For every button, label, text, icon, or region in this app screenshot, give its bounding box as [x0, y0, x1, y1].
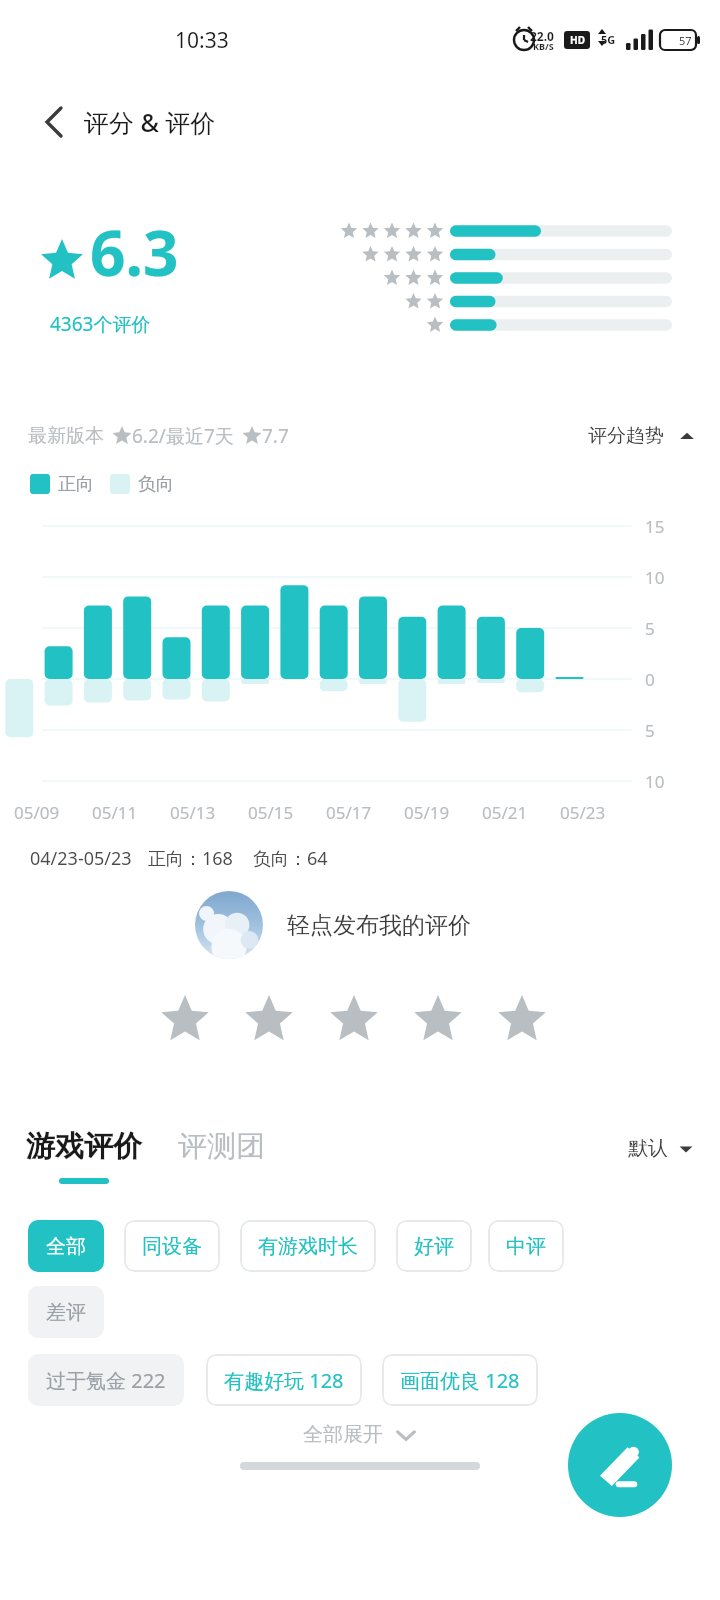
staticText: 4363个评价	[50, 311, 151, 337]
button[interactable]: 过于氪金 222	[28, 1354, 184, 1406]
button[interactable]: Rate this app	[0, 990, 720, 1050]
button[interactable]: 轻点发布我的评价	[0, 880, 720, 970]
staticText: 10	[645, 770, 665, 793]
staticText: 游戏评价	[26, 1128, 142, 1165]
staticText: 05/09	[14, 801, 60, 824]
button[interactable]: 默认	[628, 1136, 694, 1161]
staticText: 轻点发布我的评价	[287, 911, 471, 940]
staticText: 全部展开	[303, 1422, 383, 1447]
staticText: 好评	[414, 1234, 454, 1259]
staticText: 全部	[46, 1234, 86, 1259]
staticText: 评分 & 评价	[84, 105, 216, 139]
staticText: 5	[645, 719, 655, 742]
staticText: 评测团	[178, 1128, 265, 1165]
staticText: 05/23	[560, 801, 606, 824]
staticText: 0	[645, 668, 655, 691]
button[interactable]: 游戏评价	[26, 1128, 142, 1184]
staticText: 同设备	[142, 1234, 202, 1259]
button[interactable]: 全部	[28, 1220, 104, 1272]
staticText: 负向：64	[253, 846, 328, 871]
staticText: HD	[570, 33, 585, 47]
staticText: 05/21	[482, 801, 528, 824]
staticText: 10	[645, 566, 665, 589]
staticText: 负向	[138, 473, 174, 496]
staticText: 有游戏时长	[258, 1234, 358, 1259]
staticText: 评分趋势	[588, 424, 664, 448]
staticText: 6.3	[90, 210, 179, 294]
staticText: 6.2/最近7天	[132, 423, 234, 449]
staticText: 05/11	[92, 801, 138, 824]
staticText: 差评	[46, 1300, 86, 1325]
button[interactable]: 中评	[488, 1220, 564, 1272]
button[interactable]: Back	[30, 98, 78, 146]
staticText: 正向：168	[148, 846, 233, 871]
button[interactable]: 评测团	[178, 1128, 265, 1165]
button[interactable]: 有游戏时长	[240, 1220, 376, 1272]
button[interactable]: 全部展开	[303, 1422, 417, 1447]
staticText: 过于氪金 222	[46, 1367, 166, 1394]
staticText: 05/19	[404, 801, 450, 824]
staticText: 默认	[628, 1136, 668, 1161]
staticText: 05/13	[170, 801, 216, 824]
staticText: 10:33	[175, 26, 229, 55]
staticText: KB/S	[533, 40, 554, 52]
button[interactable]: 差评	[28, 1286, 104, 1338]
staticText: 5G	[601, 32, 616, 47]
staticText: 画面优良 128	[400, 1367, 520, 1394]
button[interactable]: Write review	[568, 1413, 672, 1517]
staticText: 05/17	[326, 801, 372, 824]
button[interactable]: 评分趋势	[588, 424, 696, 448]
button[interactable]: 同设备	[124, 1220, 220, 1272]
staticText: 5	[645, 617, 655, 640]
button[interactable]: 有趣好玩 128	[206, 1354, 362, 1406]
staticText: 有趣好玩 128	[224, 1367, 344, 1394]
staticText: 最新版本	[28, 424, 104, 448]
staticText: 04/23-05/23	[30, 846, 132, 871]
staticText: 中评	[506, 1234, 546, 1259]
button[interactable]: 好评	[396, 1220, 472, 1272]
staticText: 05/15	[248, 801, 294, 824]
staticText: 22.0	[530, 28, 554, 44]
button[interactable]: 画面优良 128	[382, 1354, 538, 1406]
staticText: 57	[679, 33, 692, 48]
staticText: 正向	[58, 473, 94, 496]
staticText: 15	[645, 515, 665, 538]
staticText: 7.7	[262, 423, 289, 449]
